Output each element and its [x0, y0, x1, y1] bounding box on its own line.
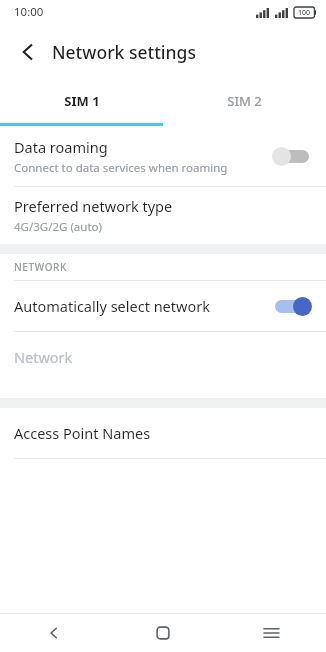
button[interactable]: Automatically select network [0, 281, 326, 331]
button[interactable]: Data roaming [0, 126, 326, 186]
button[interactable]: Back [8, 32, 48, 72]
staticText: Preferred network type [14, 196, 173, 216]
staticText: Automatically select network [14, 296, 210, 316]
staticText: SIM 1 [64, 92, 100, 110]
staticText: Network [14, 347, 73, 367]
button[interactable]: Back [0, 614, 108, 652]
staticText: SIM 2 [227, 92, 262, 110]
staticText: NETWORK [14, 260, 67, 274]
staticText: 100 [298, 8, 311, 18]
button[interactable]: Toggle on [272, 294, 312, 318]
staticText: Data roaming [14, 137, 108, 157]
button[interactable]: SIM 1 [0, 80, 163, 126]
button[interactable]: Toggle off [272, 144, 312, 168]
staticText: Access Point Names [14, 423, 151, 443]
button[interactable]: SIM 2 [163, 80, 326, 126]
staticText: 4G/3G/2G (auto) [14, 219, 102, 235]
staticText: Connect to data services when roaming [14, 160, 228, 176]
button[interactable]: Network [0, 332, 326, 382]
button[interactable]: Recent apps [217, 614, 326, 652]
staticText: Network settings [52, 40, 196, 64]
button[interactable]: Preferred network type [0, 187, 326, 244]
staticText: 10:00 [14, 4, 44, 20]
button[interactable]: Home [108, 614, 217, 652]
button[interactable]: Access Point Names [0, 408, 326, 458]
